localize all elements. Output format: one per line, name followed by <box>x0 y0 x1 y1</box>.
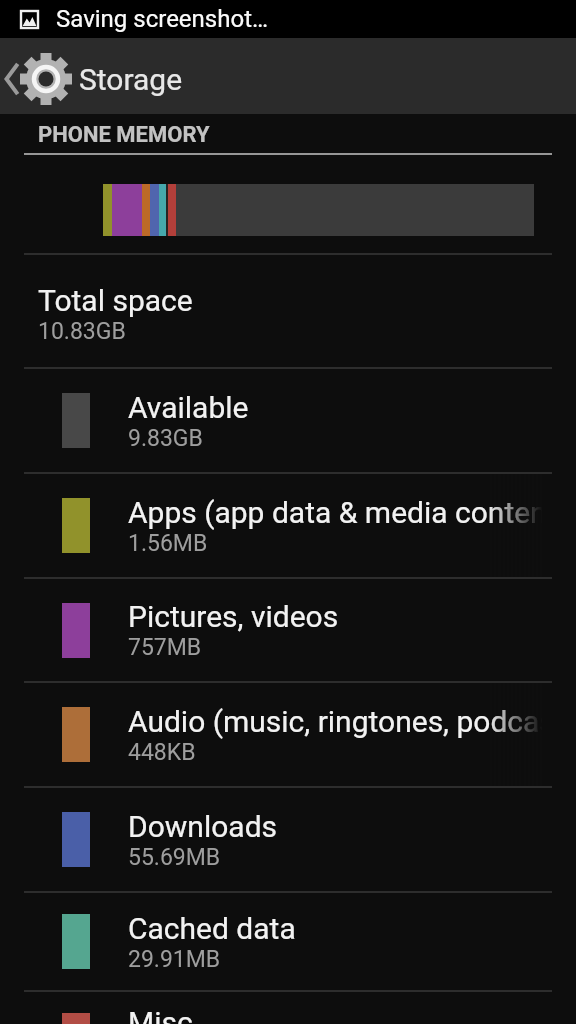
staticText: Downloads <box>128 809 278 844</box>
staticText: Storage <box>79 62 183 97</box>
staticText: Saving screenshot… <box>56 5 269 33</box>
staticText: 448KB <box>128 739 196 766</box>
staticText: 757MB <box>128 634 202 661</box>
staticText: Misc <box>128 1005 193 1024</box>
button[interactable]: Available <box>0 369 576 472</box>
staticText: Apps (app data & media content) <box>128 495 567 530</box>
button[interactable]: Cached data <box>0 893 576 990</box>
staticText: 10.83GB <box>38 318 126 345</box>
staticText: Cached data <box>128 911 296 946</box>
button[interactable]: Storage <box>0 41 183 117</box>
button[interactable]: Audio (music, ringtones, podcasts, and o… <box>0 683 576 786</box>
staticText: 55.69MB <box>128 844 221 871</box>
button[interactable]: Misc <box>0 992 576 1024</box>
staticText: Audio (music, ringtones, podcasts, and o… <box>128 704 576 739</box>
staticText: 9.83GB <box>128 425 203 452</box>
staticText: PHONE MEMORY <box>38 122 210 148</box>
staticText: 1.56MB <box>128 530 208 557</box>
button[interactable]: Apps (app data & media content) <box>0 474 576 577</box>
button[interactable]: Pictures, videos <box>0 579 576 681</box>
button[interactable]: Total space <box>0 255 576 367</box>
staticText: Total space <box>38 283 193 318</box>
button[interactable]: Downloads <box>0 788 576 891</box>
staticText: 29.91MB <box>128 946 221 973</box>
staticText: Available <box>128 390 249 425</box>
staticText: Pictures, videos <box>128 599 339 634</box>
